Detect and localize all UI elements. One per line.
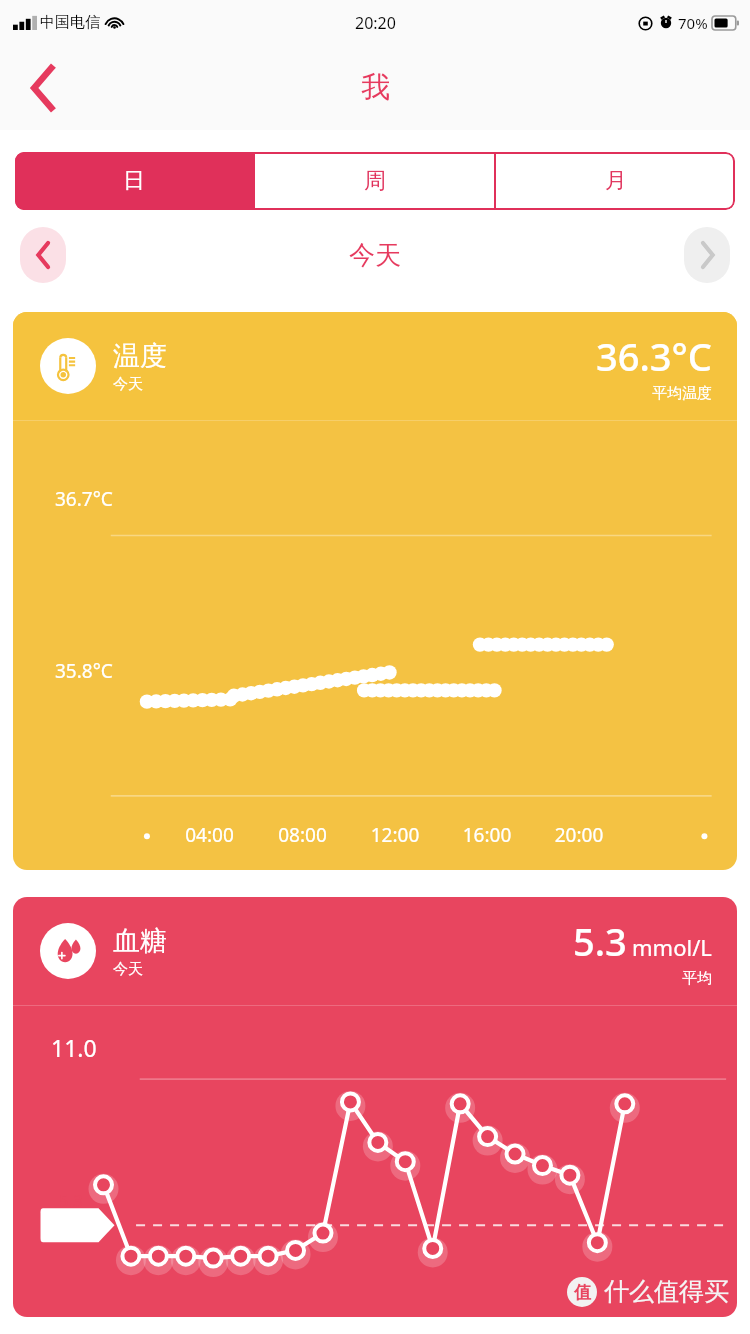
- button[interactable]: 温度: [13, 312, 737, 870]
- staticText: 36.7°C: [55, 486, 113, 512]
- staticText: 11.0: [51, 1032, 97, 1063]
- staticText: 周: [364, 167, 386, 195]
- button[interactable]: 血糖: [13, 897, 737, 1317]
- button[interactable]: 日: [15, 152, 253, 210]
- staticText: 04:00: [163, 822, 256, 848]
- button[interactable]: 今天: [349, 239, 401, 272]
- staticText: 值: [574, 1282, 591, 1303]
- staticText: 月: [605, 167, 627, 195]
- staticText: 5.3: [59, 1189, 84, 1212]
- staticText: 20:20: [355, 12, 396, 34]
- staticText: 20:00: [533, 822, 625, 848]
- staticText: 中国电信: [40, 13, 100, 32]
- staticText: 今天: [113, 960, 143, 979]
- staticText: 16:00: [441, 822, 533, 848]
- staticText: 什么值得买: [604, 1276, 729, 1307]
- button[interactable]: Back: [8, 53, 78, 123]
- staticText: 平均: [682, 969, 712, 988]
- button[interactable]: Previous day: [20, 227, 66, 283]
- staticText: 5.3: [573, 915, 627, 967]
- staticText: 日: [123, 167, 145, 195]
- staticText: 36.3°C: [596, 330, 712, 382]
- staticText: 08:00: [256, 822, 349, 848]
- staticText: 35.8°C: [55, 658, 113, 684]
- staticText: 血糖: [113, 924, 167, 958]
- staticText: 温度: [113, 339, 167, 373]
- button[interactable]: 月: [496, 152, 735, 210]
- staticText: 我: [361, 69, 390, 106]
- staticText: 12:00: [349, 822, 441, 848]
- staticText: mmol/L: [632, 932, 712, 962]
- staticText: 70%: [678, 13, 708, 33]
- staticText: 平均温度: [652, 384, 712, 403]
- button[interactable]: Next day: [684, 227, 730, 283]
- staticText: 今天: [113, 375, 143, 394]
- button[interactable]: 周: [255, 152, 494, 210]
